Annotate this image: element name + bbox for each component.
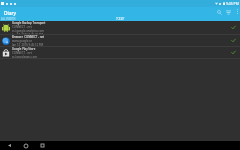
button[interactable]: Google Backup Transport xyxy=(0,21,240,35)
button[interactable]: Google Play Store xyxy=(0,47,240,59)
staticText: CONNECT - net xyxy=(12,51,32,55)
staticText: Google Backup Transport xyxy=(12,21,46,25)
staticText: ALL EVENTS xyxy=(1,17,16,20)
staticText: Jan 12, 2016 9:45:22 PM xyxy=(12,33,44,34)
staticText: ssl.google-analytics.com xyxy=(12,29,45,33)
button[interactable]: ALL EVENTS xyxy=(0,17,18,20)
staticText: 9:45 PM xyxy=(226,1,239,6)
staticText: TODAY xyxy=(116,17,125,20)
staticText: Google Play Store xyxy=(12,47,36,51)
button[interactable]: TODAY xyxy=(110,17,130,20)
button[interactable]: Search xyxy=(215,8,223,16)
staticText: ssl.googleapis.com xyxy=(12,55,38,58)
staticText: CONNECT - net xyxy=(12,25,32,29)
staticText: Diary xyxy=(4,10,17,17)
button[interactable]: More options xyxy=(234,8,240,14)
button[interactable]: Home xyxy=(21,141,30,150)
button[interactable]: Recent apps xyxy=(38,141,47,150)
button[interactable]: Back xyxy=(5,141,14,150)
button[interactable]: Browser CONNECT - net xyxy=(0,35,240,47)
button[interactable]: Filter xyxy=(224,8,233,17)
staticText: www.google.cn xyxy=(12,39,33,43)
staticText: Jan 12, 2016 9:45:12 PM xyxy=(12,43,44,46)
staticText: Browser CONNECT - net xyxy=(12,35,44,39)
